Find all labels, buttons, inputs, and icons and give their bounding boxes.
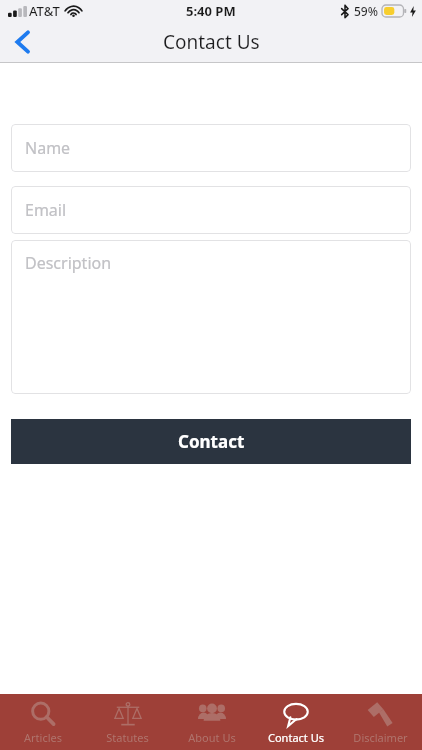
button[interactable]: Description (11, 240, 411, 394)
staticText: Articles (24, 730, 62, 745)
staticText: Disclaimer (353, 730, 408, 745)
staticText: Description (25, 252, 112, 274)
button[interactable]: About Us (170, 694, 254, 750)
button[interactable]: Contact Us (254, 694, 338, 750)
button[interactable]: Contact (11, 419, 411, 464)
staticText: Contact Us (163, 29, 260, 55)
staticText: AT&T (29, 2, 60, 20)
staticText: Contact (178, 430, 245, 453)
staticText: Email (25, 199, 67, 221)
button[interactable]: Articles (0, 694, 85, 750)
button[interactable]: Back (0, 22, 44, 62)
staticText: 59% (354, 3, 378, 19)
staticText: 5:40 PM (186, 2, 236, 20)
button[interactable]: Email (11, 186, 411, 234)
staticText: Contact Us (268, 730, 324, 745)
button[interactable]: Name (11, 124, 411, 172)
staticText: About Us (188, 730, 236, 745)
button[interactable]: Statutes (85, 694, 170, 750)
staticText: Statutes (106, 730, 149, 745)
staticText: Name (25, 137, 71, 159)
button[interactable]: Disclaimer (338, 694, 422, 750)
